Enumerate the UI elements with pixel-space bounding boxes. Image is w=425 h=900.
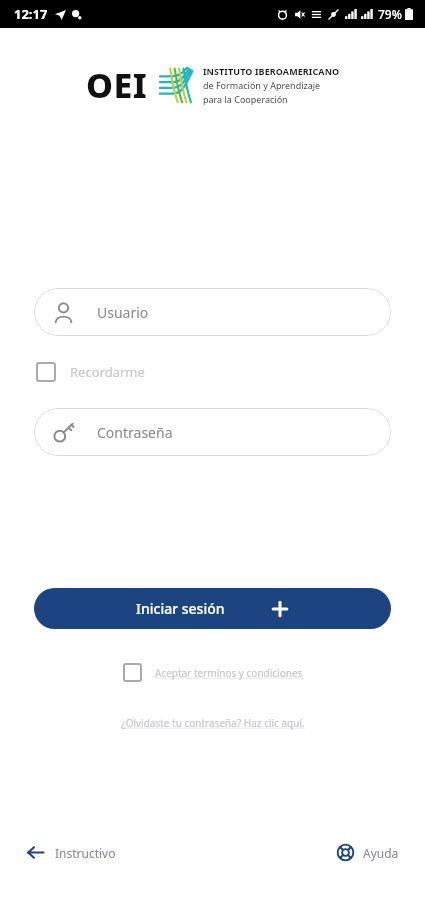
button[interactable]: Instructivo: [22, 839, 120, 866]
button[interactable]: Aceptar terminos y condiciones: [121, 660, 305, 685]
button[interactable]: Contraseña: [34, 408, 391, 456]
staticText: 79%: [378, 6, 402, 22]
button[interactable]: Recordarme: [34, 358, 147, 386]
other: Agregar: [271, 600, 289, 618]
staticText: Ayuda: [363, 845, 399, 861]
staticText: OEI: [86, 62, 148, 108]
staticText: Instructivo: [55, 845, 116, 861]
staticText: Contraseña: [97, 423, 173, 442]
other: Instructivo: [26, 843, 45, 862]
button[interactable]: Usuario: [34, 288, 391, 336]
other: Ayuda: [337, 844, 354, 861]
button[interactable]: Ayuda: [333, 840, 403, 865]
button[interactable]: ¿Olvidaste tu contraseña? Haz clic aquí.: [117, 712, 309, 734]
staticText: para la Cooperación: [203, 93, 288, 105]
staticText: Usuario: [97, 303, 149, 322]
staticText: de Formación y Aprendizaje: [203, 79, 321, 91]
staticText: INSTITUTO IBEROAMERICANO: [203, 65, 340, 77]
staticText: Recordarme: [70, 363, 145, 381]
staticText: Aceptar terminos y condiciones: [155, 666, 303, 680]
button[interactable]: Iniciar sesión: [34, 588, 391, 629]
staticText: Iniciar sesión: [136, 599, 225, 618]
staticText: 12:17: [14, 5, 48, 23]
